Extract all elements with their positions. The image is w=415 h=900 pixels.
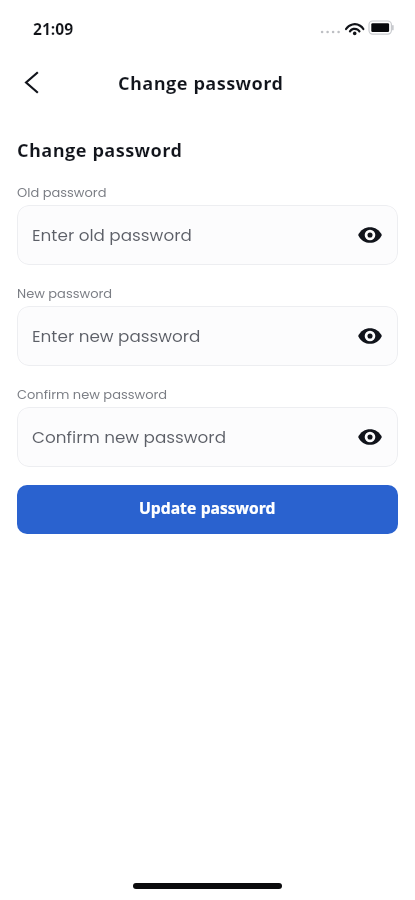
staticText: Update password xyxy=(139,497,276,524)
staticText: 21:09 xyxy=(33,18,74,45)
staticText: New password xyxy=(17,284,113,302)
staticText: Change password xyxy=(118,70,284,101)
button[interactable]: Back xyxy=(12,63,50,101)
button[interactable]: Confirm new password xyxy=(17,407,398,467)
button[interactable]: Update password xyxy=(17,485,398,534)
button[interactable]: Enter new password xyxy=(17,306,398,366)
button[interactable]: Show password xyxy=(355,220,385,250)
staticText: Old password xyxy=(17,183,107,201)
staticText: Change password xyxy=(17,137,183,168)
staticText: Enter new password xyxy=(32,324,201,348)
button[interactable]: Show password xyxy=(355,422,385,452)
staticText: Confirm new password xyxy=(17,385,168,403)
button[interactable]: Enter old password xyxy=(17,205,398,265)
button[interactable]: Show password xyxy=(355,321,385,351)
staticText: Confirm new password xyxy=(32,425,226,449)
staticText: Enter old password xyxy=(32,223,192,247)
